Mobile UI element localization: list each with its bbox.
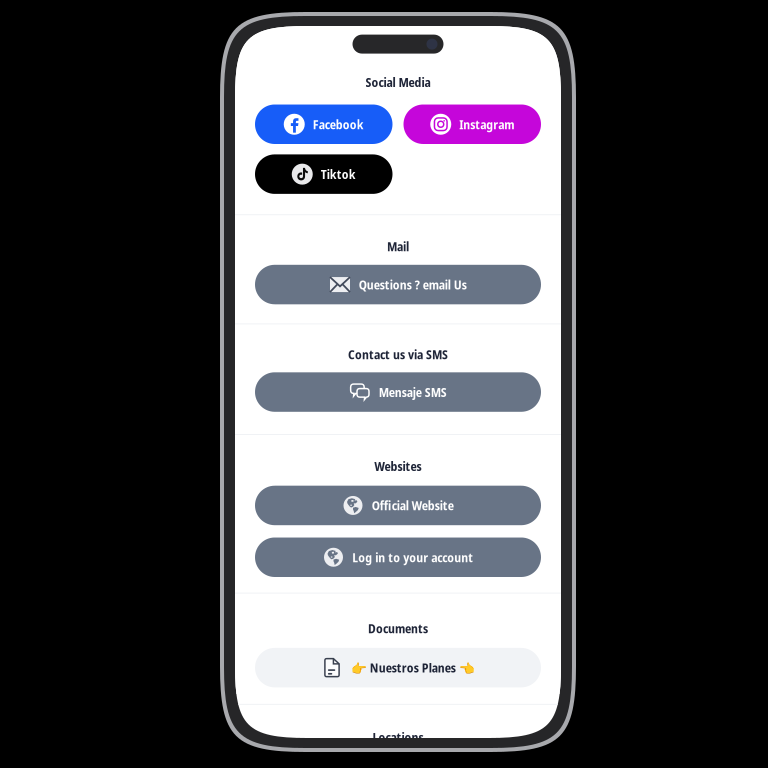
staticText: Documents xyxy=(368,620,428,637)
staticText: Questions ? email Us xyxy=(359,276,467,293)
staticText: Official Website xyxy=(372,497,454,514)
button[interactable]: Log in to your account xyxy=(255,537,541,577)
button[interactable]: Instagram xyxy=(403,104,541,144)
button[interactable]: Questions ? email Us xyxy=(255,265,541,304)
button[interactable]: Official Website xyxy=(255,486,541,525)
staticText: Facebook xyxy=(313,116,364,133)
button[interactable]: Facebook xyxy=(255,104,392,144)
button[interactable]: Tiktok xyxy=(255,154,392,194)
staticText: Mail xyxy=(387,238,409,255)
staticText: Log in to your account xyxy=(352,549,473,566)
button[interactable]: Mensaje SMS xyxy=(255,372,541,412)
staticText: 👉 Nuestros Planes 👈 xyxy=(351,659,475,676)
staticText: Social Media xyxy=(365,73,430,91)
staticText: Instagram xyxy=(459,116,514,133)
staticText: Contact us via SMS xyxy=(348,346,448,363)
staticText: Locations xyxy=(372,728,423,746)
staticText: Mensaje SMS xyxy=(379,383,447,401)
button[interactable]: 👉 Nuestros Planes 👈 xyxy=(255,648,541,687)
staticText: Websites xyxy=(374,458,421,475)
staticText: Tiktok xyxy=(321,165,356,183)
